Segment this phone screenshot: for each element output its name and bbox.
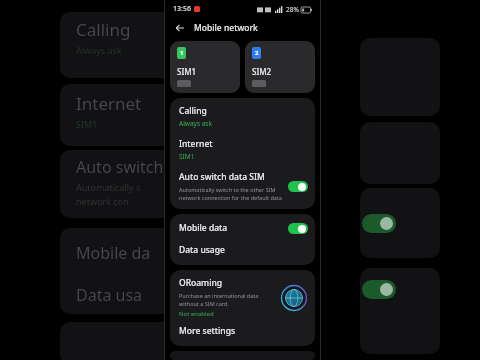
staticText: 1 <box>180 49 184 57</box>
staticText: Calling <box>179 105 207 117</box>
button[interactable]: Auto switch data SIM <box>170 167 315 209</box>
staticText: Internet <box>76 92 142 115</box>
staticText: Automatically switch to the other SIM wh… <box>179 186 284 193</box>
button[interactable]: Mobile data <box>170 214 315 240</box>
staticText: network connection for the default data … <box>179 194 284 201</box>
staticText: Auto switch data SIM <box>179 171 265 183</box>
button[interactable]: Data usage <box>170 240 315 265</box>
staticText: Always ask <box>76 44 122 56</box>
staticText: Auto switch <box>76 156 164 178</box>
staticText: Internet <box>179 138 213 150</box>
staticText: ORoaming <box>179 277 223 289</box>
button[interactable]: Internet <box>170 133 315 167</box>
staticText: without a SIM card. <box>179 300 229 307</box>
staticText: SIM1 <box>179 152 195 161</box>
staticText: Mobile data <box>179 222 288 234</box>
button[interactable]: 2 <box>245 41 315 93</box>
button[interactable]: 1 <box>170 41 240 93</box>
staticText: More settings <box>179 325 236 337</box>
staticText: 28% <box>286 5 299 14</box>
staticText: SIM2 <box>252 66 272 77</box>
staticText: Mobile da <box>76 242 151 264</box>
staticText: Calling <box>76 18 131 41</box>
button[interactable]: More settings <box>170 323 315 346</box>
staticText: SIM1 <box>76 118 98 130</box>
staticText: Always ask <box>179 119 212 128</box>
staticText: network con <box>76 195 129 207</box>
button[interactable]: Back <box>172 20 188 36</box>
staticText: 2 <box>255 49 259 57</box>
staticText: Data usage <box>179 244 225 256</box>
staticText: 13:56 <box>173 4 191 14</box>
staticText: Data usa <box>76 284 143 306</box>
button[interactable]: Toggle <box>288 223 308 234</box>
staticText: Purchase an international data package t… <box>179 292 278 299</box>
button[interactable]: Calling <box>170 98 315 133</box>
button[interactable]: ORoaming <box>170 270 315 323</box>
staticText: Automatically s <box>76 181 141 193</box>
staticText: SIM1 <box>177 66 197 77</box>
button[interactable]: Toggle <box>288 181 308 192</box>
staticText: Not enabled <box>179 310 214 318</box>
staticText: Mobile network <box>194 22 258 34</box>
